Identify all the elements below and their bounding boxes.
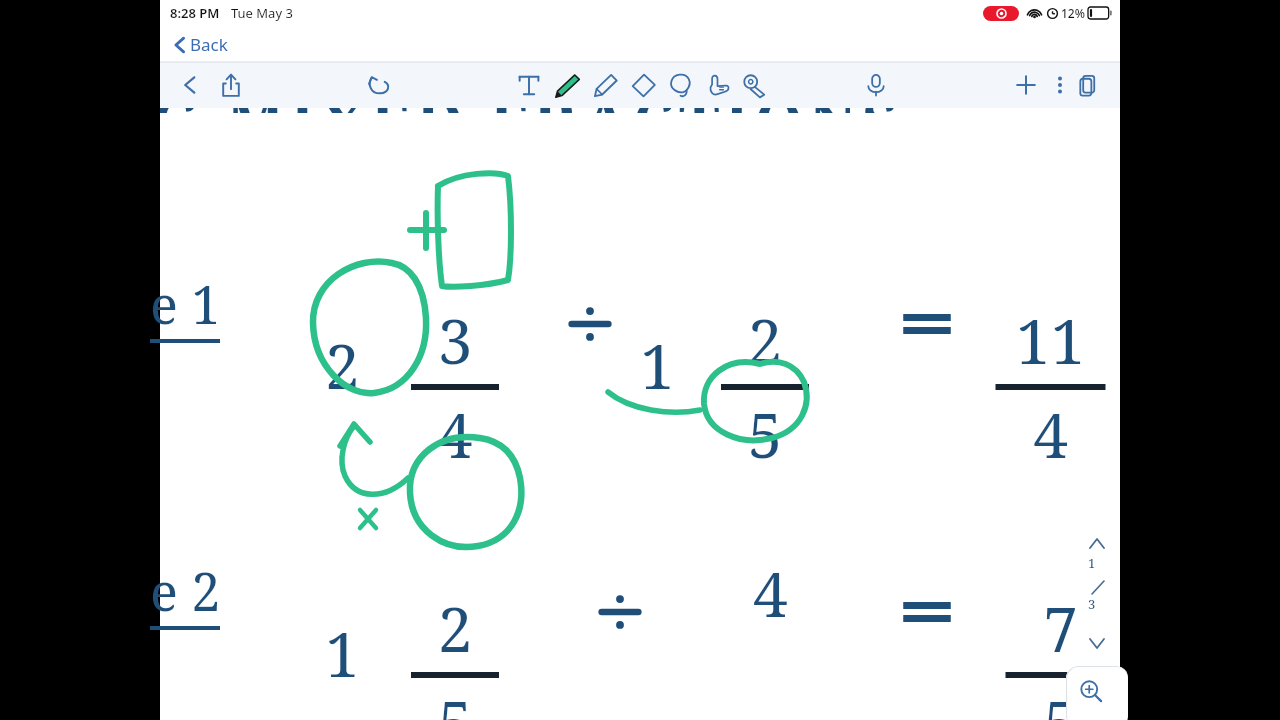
- staticText: 4: [405, 392, 505, 476]
- staticText: 5: [998, 680, 1123, 720]
- button[interactable]: Back: [174, 69, 206, 101]
- button[interactable]: Zoom in: [1066, 666, 1128, 720]
- button[interactable]: Eraser: [627, 69, 659, 101]
- button[interactable]: Shapes: [738, 69, 770, 101]
- button[interactable]: Back: [168, 29, 234, 60]
- staticText: 7: [998, 586, 1123, 670]
- button[interactable]: Hand: [701, 69, 733, 101]
- staticText: 1: [640, 323, 675, 407]
- button[interactable]: Pages: [1072, 69, 1104, 101]
- button[interactable]: Highlighter: [589, 69, 621, 101]
- staticText: 1: [1088, 554, 1096, 572]
- staticText: 1: [325, 611, 360, 695]
- button[interactable]: Share: [215, 69, 247, 101]
- button[interactable]: Add: [1010, 69, 1042, 101]
- staticText: e 1: [150, 268, 221, 339]
- staticText: 3: [405, 298, 505, 382]
- staticText: Back: [190, 33, 228, 56]
- staticText: 11: [988, 298, 1113, 382]
- staticText: 5: [405, 680, 505, 720]
- button[interactable]: Record audio: [860, 69, 892, 101]
- staticText: 2: [405, 586, 505, 670]
- staticText: 5: [715, 392, 815, 476]
- staticText: 3: [1088, 595, 1096, 613]
- staticText: 8:28 PM: [170, 4, 220, 22]
- button[interactable]: Pen: [551, 69, 583, 101]
- button[interactable]: More options: [1044, 69, 1076, 101]
- staticText: 4: [988, 392, 1113, 476]
- staticText: 4: [753, 551, 788, 635]
- staticText: 2: [715, 298, 815, 382]
- button[interactable]: Text tool: [513, 69, 545, 101]
- staticText: 2: [325, 323, 360, 407]
- staticText: e 2: [150, 555, 221, 626]
- staticText: Tue May 3: [231, 4, 293, 22]
- staticText: 12%: [1061, 5, 1085, 21]
- button[interactable]: Lasso: [664, 69, 696, 101]
- staticText: G MIXED FRACTIONS: [160, 108, 903, 113]
- button[interactable]: Undo: [363, 69, 395, 101]
